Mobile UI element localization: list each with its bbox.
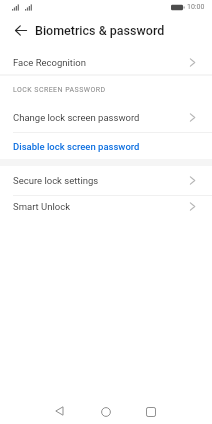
staticText: Disable lock screen password — [13, 141, 140, 152]
staticText: Face Recognition — [13, 57, 86, 68]
button[interactable]: Change lock screen password — [0, 101, 212, 134]
button[interactable]: Disable lock screen password — [0, 133, 212, 160]
staticText: LOCK SCREEN PASSWORD — [13, 86, 106, 94]
staticText: Change lock screen password — [13, 112, 140, 123]
staticText: Smart Unlock — [13, 201, 70, 212]
button[interactable]: Face Recognition — [0, 49, 212, 75]
button[interactable] — [137, 396, 165, 424]
button[interactable] — [45, 396, 73, 424]
staticText: Secure lock settings — [13, 175, 99, 186]
button[interactable]: Secure lock settings — [0, 166, 212, 195]
button[interactable] — [92, 396, 120, 424]
staticText: Biometrics & password — [35, 23, 165, 38]
staticText: 10:00 — [187, 3, 205, 11]
button[interactable] — [0, 16, 35, 45]
button[interactable]: Smart Unlock — [0, 196, 212, 216]
